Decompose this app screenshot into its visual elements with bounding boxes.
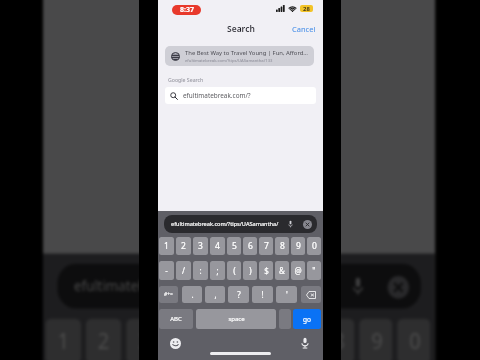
staticText: 9 [296, 240, 301, 252]
button[interactable]: 7 [259, 237, 273, 255]
staticText: @ [294, 265, 302, 276]
button[interactable]: 1 [45, 319, 81, 360]
staticText: 4 [178, 326, 190, 356]
button[interactable]: . [182, 286, 202, 303]
staticText: efultimatebreak.com/?tips/UASamantha/133 [185, 58, 273, 64]
button[interactable]: space [196, 309, 276, 329]
button[interactable]: 5 [227, 237, 241, 255]
staticText: 2 [181, 240, 186, 252]
button[interactable]: / [176, 261, 191, 280]
staticText: space [228, 315, 245, 323]
staticText: ) [249, 265, 252, 276]
staticText: - [165, 265, 168, 276]
staticText: 3 [138, 326, 150, 356]
button[interactable]: Microphone [299, 337, 311, 349]
staticText: Cancel [292, 24, 316, 34]
button[interactable]: 7 [283, 319, 316, 360]
staticText: " [312, 265, 316, 276]
button[interactable]: " [307, 261, 321, 280]
staticText: 1 [164, 240, 169, 252]
button[interactable]: ; [210, 261, 225, 280]
staticText: 6 [248, 240, 253, 252]
staticText: & [279, 265, 285, 276]
staticText: ABC [170, 315, 182, 323]
button[interactable]: 5 [207, 319, 240, 360]
button[interactable]: 3 [193, 237, 208, 255]
button[interactable]: 3 [126, 319, 162, 360]
staticText: 3 [198, 240, 203, 252]
staticText: 2 [98, 326, 110, 356]
staticText: efultimatebreak.com/? [183, 91, 251, 100]
button[interactable]: The Best Way to Travel Young | Fun, Affo… [165, 46, 314, 66]
staticText: #+= [164, 291, 173, 298]
button[interactable]: 4 [167, 319, 202, 360]
staticText: 28 [303, 5, 310, 12]
button[interactable]: 2 [86, 319, 121, 360]
button[interactable]: efultimatebreak.com/? [165, 87, 316, 104]
button[interactable]: 6 [243, 237, 257, 255]
button[interactable]: ( [227, 261, 241, 280]
button[interactable]: Dictate [287, 220, 294, 228]
button[interactable]: , [205, 286, 225, 303]
staticText: 8:37 [180, 5, 194, 15]
button[interactable]: - [159, 261, 174, 280]
button[interactable]: Backspace [301, 286, 321, 303]
button[interactable]: ! [252, 286, 273, 303]
staticText: 0 [409, 326, 421, 356]
button[interactable]: 8 [321, 319, 354, 360]
staticText: 4 [215, 240, 220, 252]
staticText: 0 [312, 240, 317, 252]
staticText: $ [264, 265, 269, 276]
button[interactable]: Cancel [292, 24, 316, 34]
button[interactable]: & [275, 261, 289, 280]
button[interactable]: : [193, 261, 208, 280]
staticText: 6 [257, 326, 269, 356]
staticText: ? [237, 289, 241, 300]
staticText: , [214, 289, 217, 300]
button[interactable]: 9 [291, 237, 305, 255]
staticText: go [303, 315, 311, 324]
button[interactable]: Clear text [303, 220, 312, 229]
button[interactable]: 6 [245, 319, 278, 360]
staticText: The Best Way to Travel Young | Fun, Affo… [185, 49, 309, 57]
button[interactable]: ' [276, 286, 297, 303]
staticText: 8 [280, 240, 285, 252]
staticText: ' [286, 289, 288, 300]
staticText: ! [261, 289, 264, 300]
button[interactable]: @ [291, 261, 305, 280]
staticText: : [199, 265, 202, 276]
staticText: 5 [219, 326, 231, 356]
staticText: ( [233, 265, 236, 276]
staticText: Search [227, 23, 255, 35]
button[interactable]: 0 [397, 319, 430, 360]
button[interactable]: 0 [307, 237, 321, 255]
button[interactable]: $ [259, 261, 273, 280]
button[interactable]: 8 [275, 237, 289, 255]
staticText: 7 [264, 240, 269, 252]
button[interactable]: efultimatebreak.com/?tips/UASamantha/ [164, 215, 317, 233]
button[interactable]: ? [228, 286, 249, 303]
staticText: 7 [295, 326, 307, 356]
button[interactable]: efultimatebreak.com/?tips/UASamantha/ [57, 264, 421, 309]
button[interactable]: 9 [359, 319, 392, 360]
staticText: 5 [232, 240, 237, 252]
button[interactable]: ) [243, 261, 257, 280]
button[interactable]: Dictate [350, 276, 366, 296]
staticText: ; [216, 265, 219, 276]
button[interactable]: Emoji keyboard [170, 338, 181, 349]
button[interactable]: Clear text [388, 276, 409, 299]
staticText: Google Search [168, 76, 204, 83]
button[interactable]: 2 [176, 237, 191, 255]
button[interactable]: 4 [210, 237, 225, 255]
button[interactable]: #+= [159, 286, 178, 303]
button[interactable]: ABC [159, 309, 193, 329]
button[interactable]: 1 [159, 237, 174, 255]
staticText: efultimatebreak.com/?tips/UASamantha/ [74, 276, 340, 296]
staticText: 9 [371, 326, 383, 356]
button[interactable]: go [293, 309, 321, 329]
staticText: . [191, 289, 194, 300]
staticText: 8 [333, 326, 345, 356]
staticText: 1 [57, 326, 69, 356]
staticText: efultimatebreak.com/?tips/UASamantha/ [171, 220, 283, 228]
